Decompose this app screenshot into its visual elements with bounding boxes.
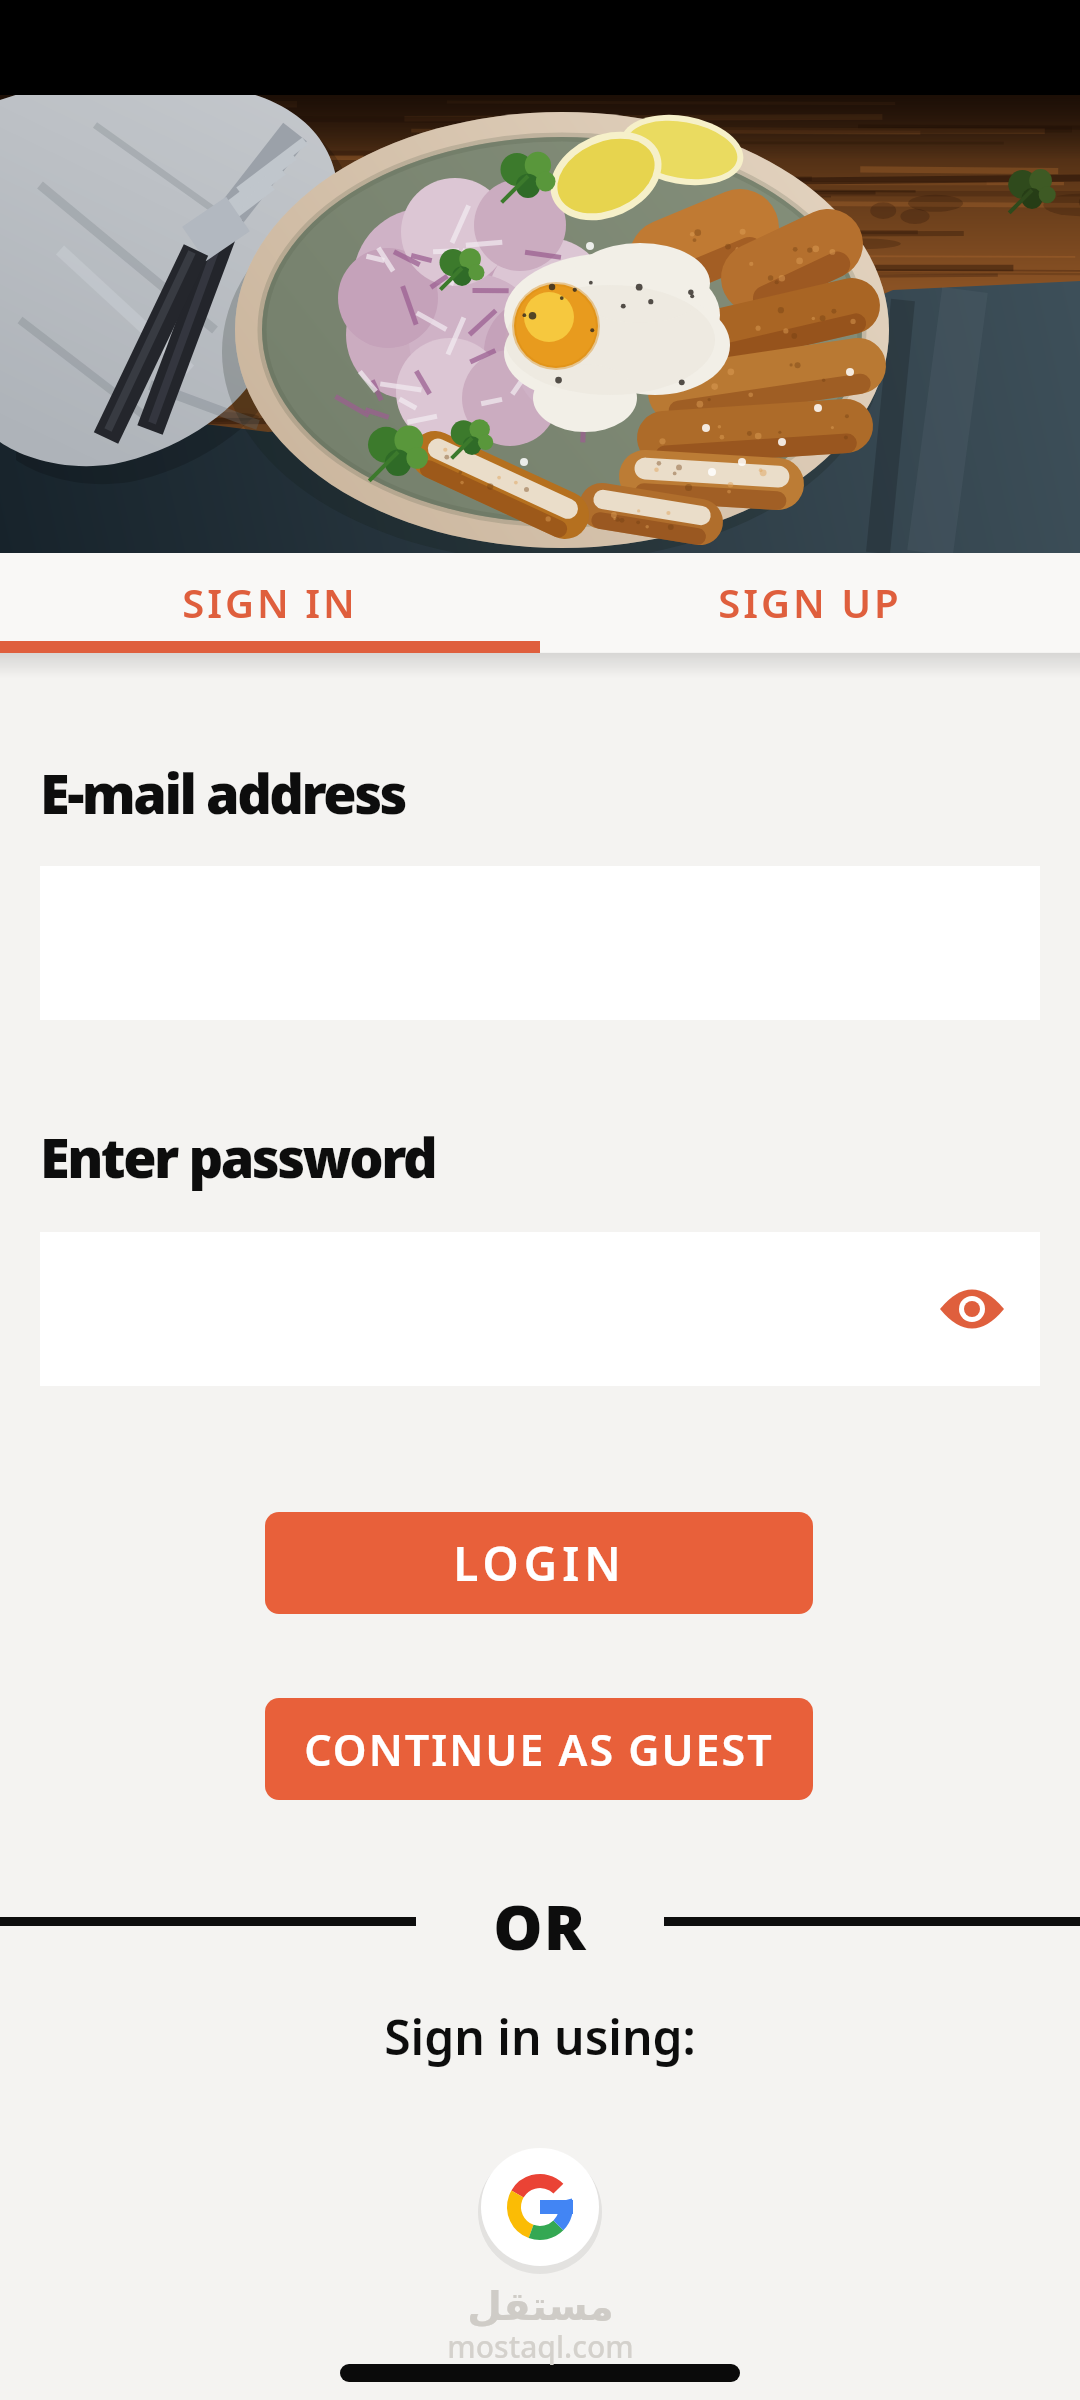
staticText: مستقل [467, 2283, 614, 2330]
staticText: SIGN IN [182, 575, 358, 629]
staticText: SIGN UP [718, 575, 902, 629]
staticText: Enter password [40, 1120, 436, 1194]
staticText: LOGIN [453, 1532, 626, 1595]
staticText: mostaql.com [447, 2326, 634, 2366]
staticText: CONTINUE AS GUEST [304, 1720, 774, 1779]
staticText: E-mail address [40, 756, 406, 830]
staticText: Sign in using: [384, 2004, 696, 2069]
staticText: OR [493, 1884, 587, 1964]
